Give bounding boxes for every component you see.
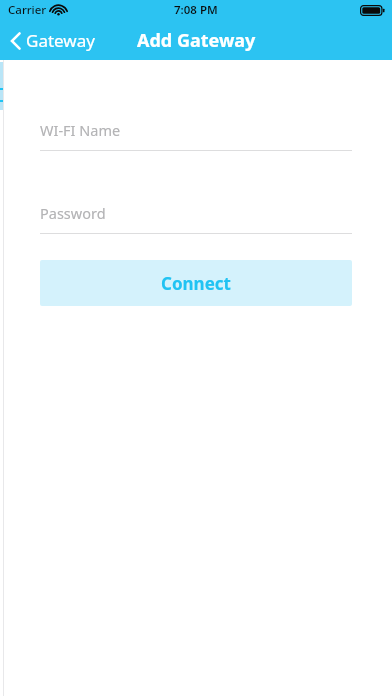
staticText: Gateway bbox=[26, 29, 95, 52]
button[interactable]: Connect bbox=[40, 260, 352, 306]
staticText: Carrier bbox=[8, 2, 47, 18]
staticText: WI-FI Name bbox=[40, 120, 121, 140]
button[interactable]: Password bbox=[40, 203, 352, 234]
button[interactable]: WI-FI Name bbox=[40, 120, 352, 151]
staticText: 7:08 PM bbox=[174, 2, 218, 18]
staticText: Connect bbox=[161, 272, 231, 295]
button[interactable]: Gateway bbox=[10, 29, 95, 52]
staticText: Password bbox=[40, 203, 106, 223]
staticText: Add Gateway bbox=[137, 28, 256, 53]
